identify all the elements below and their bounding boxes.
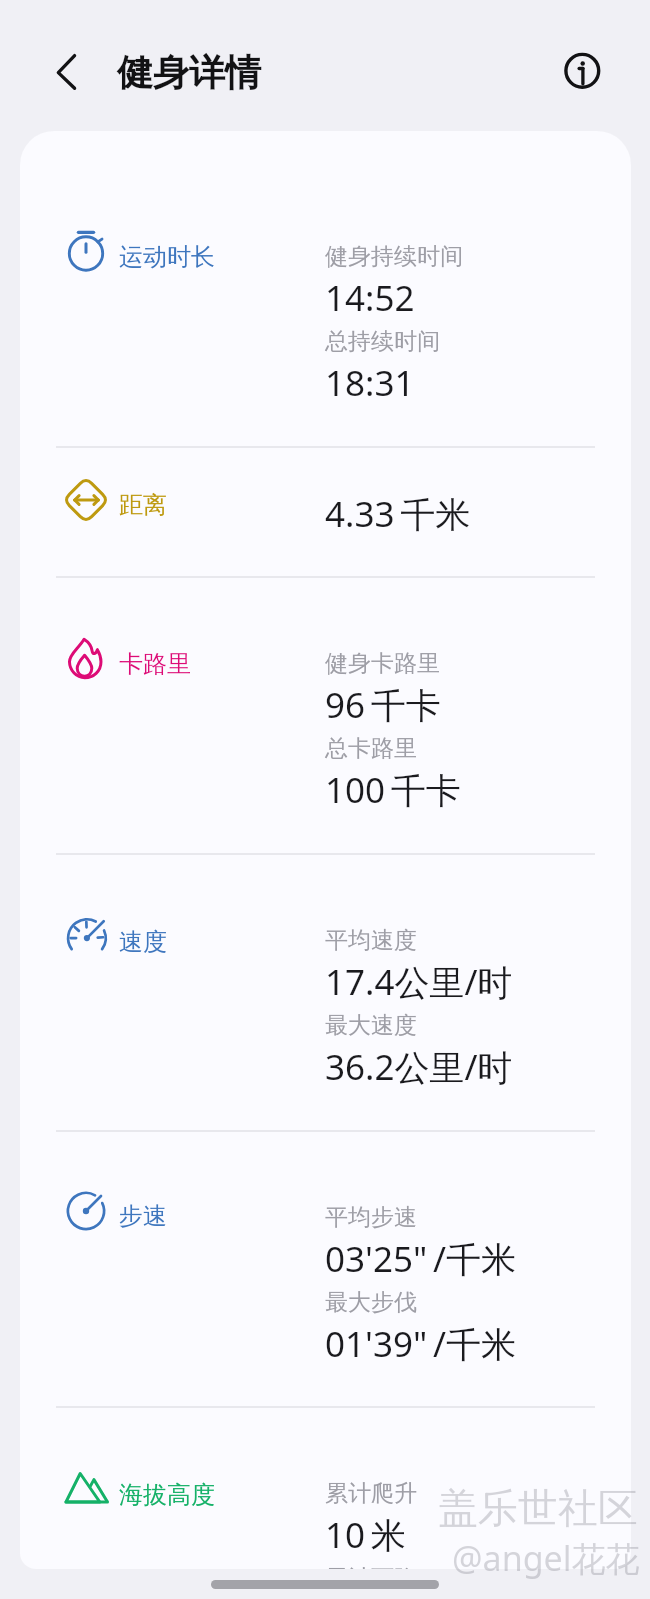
- staticText: 健身持续时间: [325, 242, 463, 271]
- staticText: 18:31: [325, 359, 415, 407]
- staticText: 步速: [119, 1201, 167, 1231]
- staticText: 10 米: [325, 1511, 406, 1559]
- staticText: 健身详情: [117, 50, 261, 95]
- staticText: 速度: [119, 927, 167, 957]
- staticText: 运动时长: [119, 242, 215, 272]
- staticText: 平均步速: [325, 1203, 417, 1232]
- staticText: 最大步伐: [325, 1288, 417, 1317]
- staticText: 01'39" /千米: [325, 1320, 517, 1368]
- button[interactable]: Information: [556, 44, 610, 98]
- staticText: 平均速度: [325, 926, 417, 955]
- staticText: 最大速度: [325, 1011, 417, 1040]
- staticText: 100 千卡: [325, 766, 461, 814]
- staticText: 健身卡路里: [325, 649, 440, 678]
- staticText: 总持续时间: [325, 327, 440, 356]
- button[interactable]: Back: [42, 44, 96, 98]
- staticText: 36.2公里/时: [325, 1043, 513, 1091]
- button[interactable]: 卡路里: [20, 576, 631, 853]
- staticText: 17.4公里/时: [325, 958, 513, 1006]
- staticText: 03'25" /千米: [325, 1235, 517, 1283]
- staticText: 总卡路里: [325, 734, 417, 763]
- staticText: 距离: [119, 490, 167, 520]
- staticText: @angel花花: [452, 1535, 640, 1581]
- staticText: 盖乐世社区: [438, 1483, 638, 1533]
- staticText: 海拔高度: [119, 1480, 215, 1510]
- button[interactable]: 步速: [20, 1130, 631, 1406]
- staticText: 累计爬升: [325, 1479, 417, 1508]
- staticText: 96 千卡: [325, 681, 441, 729]
- button[interactable]: 运动时长: [20, 131, 631, 446]
- staticText: 14:52: [325, 274, 415, 322]
- staticText: 4.33 千米: [325, 490, 471, 538]
- staticText: 累计下降: [325, 1564, 417, 1569]
- button[interactable]: 海拔高度: [20, 1406, 631, 1569]
- button[interactable]: 速度: [20, 853, 631, 1130]
- staticText: 卡路里: [119, 649, 191, 679]
- button[interactable]: 距离: [20, 446, 631, 576]
